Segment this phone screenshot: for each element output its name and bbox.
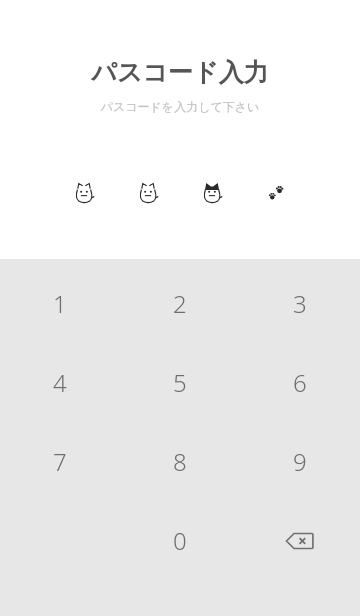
staticText: パスコードを入力して下さい xyxy=(0,99,360,114)
button[interactable]: 8 xyxy=(120,422,240,501)
button[interactable]: 2 xyxy=(120,264,240,343)
staticText: 5 xyxy=(173,366,187,399)
button[interactable]: 7 xyxy=(0,422,120,501)
button[interactable]: 6 xyxy=(240,343,360,422)
button[interactable]: 4 xyxy=(0,343,120,422)
staticText: 8 xyxy=(173,445,187,478)
staticText: パスコード入力 xyxy=(0,57,360,88)
staticText: 7 xyxy=(53,445,67,478)
button[interactable]: 3 xyxy=(240,264,360,343)
staticText: 1 xyxy=(53,287,67,320)
staticText: 3 xyxy=(293,287,307,320)
staticText: 2 xyxy=(173,287,187,320)
button[interactable]: 1 xyxy=(0,264,120,343)
staticText: 6 xyxy=(293,366,307,399)
staticText: 0 xyxy=(173,524,187,557)
button[interactable]: 9 xyxy=(240,422,360,501)
staticText: 9 xyxy=(293,445,307,478)
staticText: 4 xyxy=(53,366,67,399)
button[interactable]: 0 xyxy=(120,501,240,580)
button[interactable]: 5 xyxy=(120,343,240,422)
button[interactable]: Backspace xyxy=(240,501,360,580)
